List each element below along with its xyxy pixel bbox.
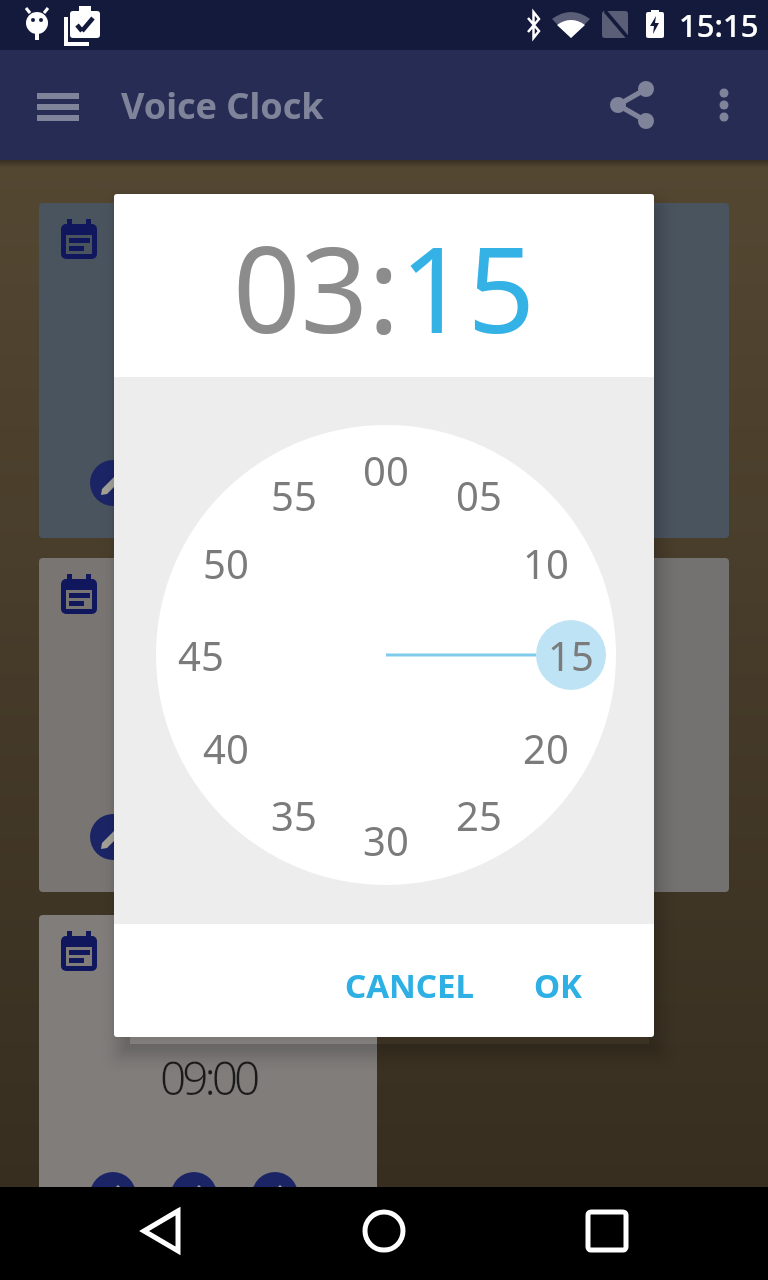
staticText: 45	[178, 628, 224, 682]
button[interactable]	[27, 83, 89, 131]
button[interactable]	[600, 72, 664, 138]
staticText: 30	[363, 813, 409, 867]
button[interactable]	[391, 203, 729, 538]
button[interactable]: 55	[254, 455, 334, 535]
staticText: 15:15	[679, 4, 759, 46]
button[interactable]: 20	[506, 708, 586, 788]
button[interactable]: CANCEL	[339, 953, 479, 1017]
staticText: 09:00	[160, 1046, 257, 1109]
button[interactable]: 10	[506, 523, 586, 603]
button[interactable]: 05	[439, 455, 519, 535]
button[interactable]: 40	[186, 708, 266, 788]
button[interactable]: 09:00	[39, 915, 377, 1250]
staticText: 00	[363, 443, 409, 497]
staticText: CANCEL	[345, 963, 474, 1008]
button[interactable]: 00	[346, 430, 426, 510]
button[interactable]	[39, 203, 377, 538]
staticText: 15	[400, 207, 535, 368]
staticText: 15	[548, 628, 594, 682]
staticText: Voice Clock	[121, 81, 324, 130]
button[interactable]: 15	[531, 615, 611, 695]
staticText: 20	[523, 721, 569, 775]
staticText: 40	[203, 721, 249, 775]
staticText: 25	[456, 788, 502, 842]
button[interactable]	[348, 1209, 420, 1253]
button[interactable]: OK	[508, 953, 608, 1017]
button[interactable]: 50	[186, 523, 266, 603]
staticText: 03	[233, 207, 368, 368]
staticText: 50	[203, 536, 249, 590]
button[interactable]	[696, 72, 752, 138]
button[interactable]: 45	[161, 615, 241, 695]
button[interactable]	[39, 558, 377, 892]
button[interactable]: 30	[346, 800, 426, 880]
button[interactable]: 25	[439, 775, 519, 855]
staticText: 05	[456, 468, 502, 522]
staticText: 10	[523, 536, 569, 590]
staticText: 55	[271, 468, 317, 522]
button[interactable]	[391, 558, 729, 892]
staticText: 35	[271, 788, 317, 842]
button[interactable]	[571, 1209, 643, 1253]
button[interactable]	[125, 1209, 197, 1253]
staticText: OK	[534, 963, 583, 1008]
staticText: :	[368, 207, 400, 368]
button[interactable]: 35	[254, 775, 334, 855]
